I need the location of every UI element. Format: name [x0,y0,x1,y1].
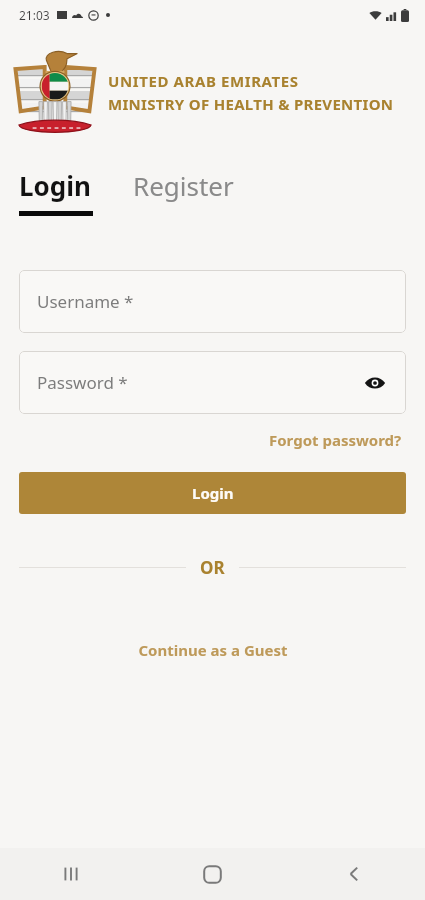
staticText: Username * [37,290,134,313]
button[interactable]: Back [283,848,425,900]
button[interactable]: Forgot password? [265,426,406,454]
staticText: MINISTRY OF HEALTH & PREVENTION [108,94,394,114]
staticText: Login [19,168,91,203]
button[interactable]: Login [19,472,406,514]
button[interactable]: Home [141,848,283,900]
staticText: UNITED ARAB EMIRATES [108,71,299,91]
staticText: Login [192,483,234,503]
staticText: OR [200,556,225,579]
button[interactable]: Username * [19,270,406,333]
button[interactable]: Register [133,168,234,203]
staticText: Forgot password? [269,430,402,450]
button[interactable]: Recent apps [0,848,141,900]
staticText: Continue as a Guest [138,640,288,660]
button[interactable]: Password * [19,351,406,414]
button[interactable]: Show password [360,368,390,398]
staticText: Password * [37,371,128,394]
staticText: 21:03 [19,7,50,23]
button[interactable]: Continue as a Guest [132,634,294,666]
button[interactable]: Login [19,168,95,203]
staticText: Register [133,168,234,203]
